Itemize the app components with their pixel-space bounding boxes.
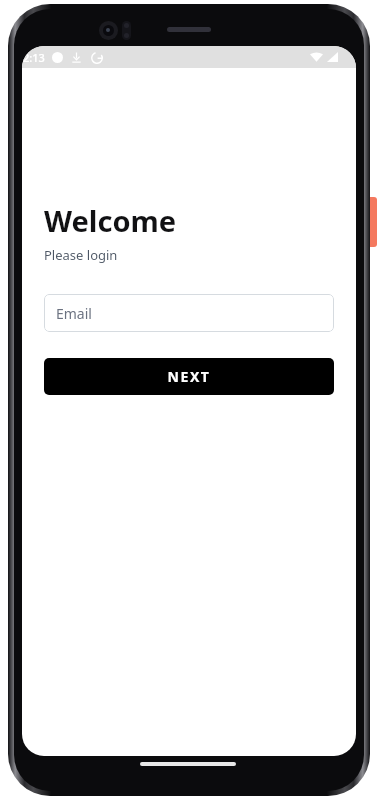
staticText: Please login [44, 246, 118, 264]
staticText: Email [56, 304, 92, 323]
staticText: NEXT [167, 367, 211, 386]
button[interactable]: Email [44, 294, 334, 332]
button[interactable]: NEXT [44, 358, 334, 395]
staticText: Welcome [44, 201, 177, 240]
button[interactable]: Power [370, 197, 377, 247]
staticText: 2:13 [23, 50, 45, 65]
